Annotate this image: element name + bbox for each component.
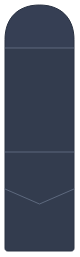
button[interactable]: Envelope card [0, 0, 80, 257]
